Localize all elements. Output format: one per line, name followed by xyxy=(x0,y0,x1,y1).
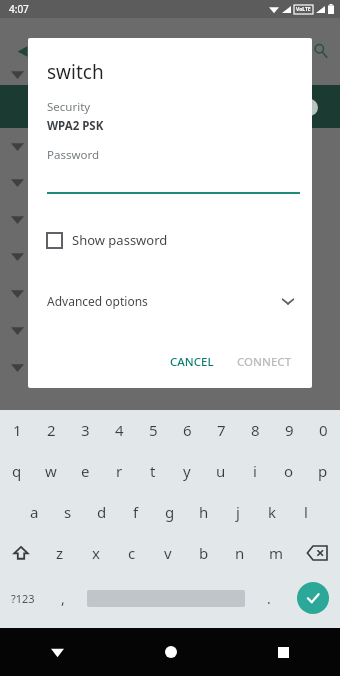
button[interactable]: 9 xyxy=(272,410,306,450)
staticText: CONNECT xyxy=(237,354,292,370)
button[interactable]: f xyxy=(119,491,153,532)
staticText: i xyxy=(253,461,257,481)
button[interactable]: Enter xyxy=(286,573,340,623)
button[interactable]: Home xyxy=(114,628,227,676)
button[interactable]: 8 xyxy=(238,410,272,450)
button[interactable]: a xyxy=(17,491,51,532)
staticText: a xyxy=(30,502,39,522)
staticText: v xyxy=(164,543,172,563)
staticText: 8 xyxy=(251,420,260,440)
button[interactable]: c xyxy=(114,532,150,573)
staticText: c xyxy=(128,543,136,563)
staticText: VoLTE xyxy=(296,6,311,13)
button[interactable]: 2 xyxy=(34,410,68,450)
button[interactable]: ?123 xyxy=(0,573,46,623)
staticText: 9 xyxy=(285,420,294,440)
button[interactable]: m xyxy=(258,532,294,573)
staticText: Password xyxy=(47,147,100,163)
staticText: b xyxy=(199,543,209,563)
button[interactable]: n xyxy=(222,532,258,573)
staticText: s xyxy=(64,502,72,522)
button[interactable]: e xyxy=(68,450,102,491)
button[interactable]: CONNECT xyxy=(229,347,300,377)
button[interactable]: Back xyxy=(0,628,114,676)
staticText: w xyxy=(45,461,57,481)
staticText: x xyxy=(92,543,100,563)
staticText: 1 xyxy=(13,420,22,440)
button[interactable]: w xyxy=(34,450,68,491)
button[interactable]: . xyxy=(252,573,286,623)
staticText: g xyxy=(165,502,175,522)
button[interactable]: 3 xyxy=(68,410,102,450)
staticText: switch xyxy=(47,59,104,85)
staticText: j xyxy=(236,502,240,522)
button[interactable]: g xyxy=(153,491,187,532)
button[interactable]: Advanced options xyxy=(28,289,312,313)
button[interactable]: 5 xyxy=(136,410,170,450)
staticText: 4 xyxy=(115,420,124,440)
staticText: Security xyxy=(47,99,91,115)
staticText: n xyxy=(235,543,245,563)
staticText: 3 xyxy=(81,420,90,440)
button[interactable]: Recents xyxy=(227,628,340,676)
staticText: o xyxy=(284,461,294,481)
button[interactable]: r xyxy=(102,450,136,491)
button[interactable]: 0 xyxy=(306,410,340,450)
staticText: r xyxy=(116,461,123,481)
staticText: d xyxy=(97,502,107,522)
button[interactable]: d xyxy=(85,491,119,532)
staticText: l xyxy=(304,502,308,522)
button[interactable]: h xyxy=(187,491,221,532)
staticText: u xyxy=(216,461,226,481)
staticText: f xyxy=(133,502,139,522)
staticText: z xyxy=(56,543,64,563)
button[interactable]: k xyxy=(255,491,289,532)
button[interactable]: i xyxy=(238,450,272,491)
button[interactable]: u xyxy=(204,450,238,491)
button[interactable]: b xyxy=(186,532,222,573)
button[interactable]: j xyxy=(221,491,255,532)
staticText: Show password xyxy=(72,231,168,249)
staticText: m xyxy=(269,543,284,563)
staticText: y xyxy=(183,461,191,481)
button[interactable]: o xyxy=(272,450,306,491)
button[interactable]: 7 xyxy=(204,410,238,450)
staticText: 2 xyxy=(47,420,56,440)
button[interactable]: y xyxy=(170,450,204,491)
staticText: 6 xyxy=(183,420,192,440)
button[interactable]: 6 xyxy=(170,410,204,450)
button[interactable]: p xyxy=(306,450,340,491)
button[interactable]: 1 xyxy=(0,410,34,450)
staticText: t xyxy=(150,461,156,481)
button[interactable]: CANCEL xyxy=(162,347,222,377)
staticText: , xyxy=(61,589,65,608)
staticText: k xyxy=(268,502,277,522)
button[interactable]: z xyxy=(42,532,78,573)
button[interactable]: v xyxy=(150,532,186,573)
staticText: WPA2 PSK xyxy=(47,118,104,134)
staticText: e xyxy=(81,461,90,481)
staticText: . xyxy=(267,589,271,608)
staticText: 0 xyxy=(319,420,328,440)
staticText: CANCEL xyxy=(170,354,214,370)
button[interactable]: l xyxy=(289,491,323,532)
button[interactable]: Show password xyxy=(28,228,312,252)
button[interactable]: Backspace xyxy=(294,532,340,573)
staticText: h xyxy=(199,502,209,522)
button[interactable]: Shift xyxy=(0,532,42,573)
staticText: 7 xyxy=(217,420,226,440)
staticText: 4:07 xyxy=(9,2,29,16)
button[interactable]: s xyxy=(51,491,85,532)
staticText: q xyxy=(12,461,22,481)
staticText: ?123 xyxy=(11,591,35,606)
button[interactable]: 4 xyxy=(102,410,136,450)
staticText: p xyxy=(318,461,328,481)
button[interactable]: x xyxy=(78,532,114,573)
button[interactable]: , xyxy=(46,573,80,623)
button[interactable]: Space xyxy=(80,573,252,623)
staticText: 5 xyxy=(149,420,158,440)
button[interactable]: q xyxy=(0,450,34,491)
button[interactable]: t xyxy=(136,450,170,491)
staticText: Advanced options xyxy=(47,293,148,309)
